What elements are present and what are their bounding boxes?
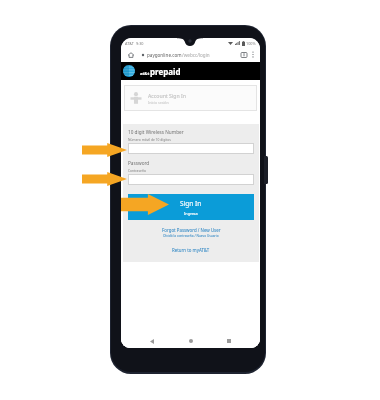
button[interactable] [128, 174, 254, 185]
staticText: Contraseña [128, 168, 146, 172]
button[interactable] [128, 143, 254, 154]
staticText: paygonline.com [147, 52, 182, 58]
button[interactable]: Home [126, 50, 135, 59]
staticText: Inicia sesión [148, 100, 169, 105]
button[interactable]: Home [183, 334, 199, 348]
button[interactable]: Account Sign In [124, 85, 257, 111]
button[interactable]: Tabs [239, 50, 248, 59]
staticText: 9:30 [136, 41, 144, 46]
staticText: Password [128, 160, 150, 166]
button[interactable]: Sign In [128, 194, 254, 220]
staticText: Número móvil de 10 dígitos [128, 137, 171, 141]
staticText: 10 digit Wireless Number [128, 129, 184, 135]
button[interactable]: Forgot Password / New User [128, 227, 254, 238]
button[interactable]: Return to myAT&T [128, 247, 254, 253]
staticText: prepaid [150, 66, 181, 77]
staticText: Return to myAT&T [172, 247, 210, 253]
staticText: at&t [140, 71, 150, 77]
staticText: Olvidó la contraseña / Nuevo Usuario [163, 234, 219, 238]
staticText: 100% [246, 41, 256, 46]
staticText: Forgot Password / New User [162, 227, 221, 233]
staticText: Ingresa [184, 211, 198, 216]
button[interactable]: More options [248, 50, 257, 59]
staticText: Sign In [180, 199, 202, 208]
button[interactable]: Back [144, 334, 160, 348]
staticText: AT&T [125, 41, 134, 46]
button[interactable]: Recent apps [221, 334, 237, 348]
staticText: Account Sign In [148, 92, 186, 99]
staticText: /webcc/login [182, 52, 210, 58]
